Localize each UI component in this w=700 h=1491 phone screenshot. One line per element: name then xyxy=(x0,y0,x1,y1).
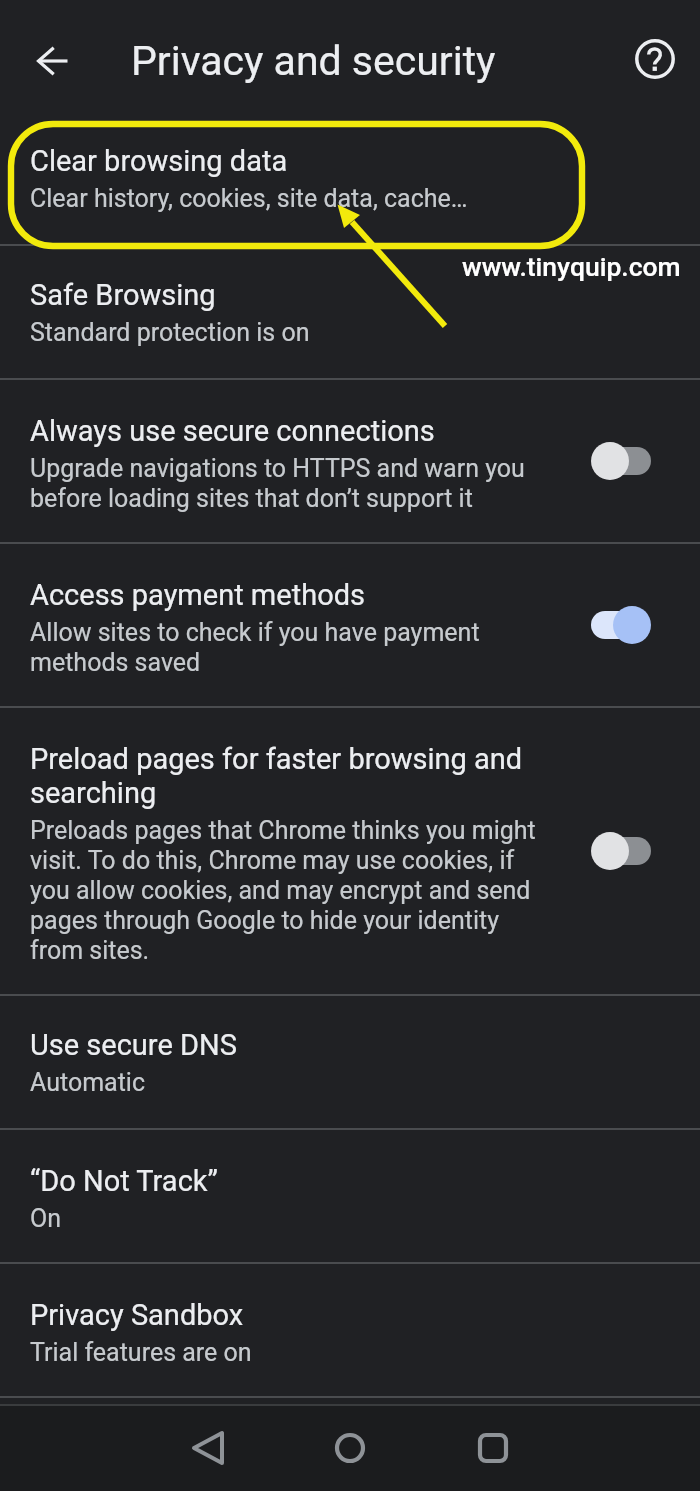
button[interactable]: Toggle on xyxy=(576,592,666,658)
button[interactable]: Back xyxy=(178,1404,238,1491)
button[interactable]: Recent apps xyxy=(463,1404,523,1491)
button[interactable]: Back xyxy=(27,34,81,88)
button[interactable]: Safe Browsing xyxy=(0,246,700,378)
staticText: www.tinyquip.com xyxy=(462,251,681,282)
staticText: Preloads pages that Chrome thinks you mi… xyxy=(30,815,545,965)
staticText: Clear history, cookies, site data, cache… xyxy=(30,183,468,213)
staticText: Automatic xyxy=(30,1067,146,1097)
staticText: Preload pages for faster browsing and se… xyxy=(30,742,545,810)
staticText: Privacy and security xyxy=(131,37,496,85)
button[interactable]: Access payment methods xyxy=(0,544,700,706)
staticText: Always use secure connections xyxy=(30,414,435,448)
button[interactable]: Privacy Sandbox xyxy=(0,1264,700,1396)
staticText: Privacy Sandbox xyxy=(30,1298,244,1332)
staticText: Allow sites to check if you have payment… xyxy=(30,617,545,677)
staticText: Trial features are on xyxy=(30,1337,252,1367)
button[interactable]: Toggle off xyxy=(576,428,666,494)
button[interactable]: “Do Not Track” xyxy=(0,1130,700,1262)
staticText: On xyxy=(30,1203,62,1233)
button[interactable]: Clear browsing data xyxy=(0,121,700,244)
staticText: Upgrade navigations to HTTPS and warn yo… xyxy=(30,453,545,513)
staticText: Use secure DNS xyxy=(30,1028,237,1062)
staticText: Safe Browsing xyxy=(30,278,216,312)
button[interactable]: Preload pages for faster browsing and se… xyxy=(0,708,700,994)
staticText: “Do Not Track” xyxy=(30,1164,218,1198)
staticText: Access payment methods xyxy=(30,578,365,612)
button[interactable]: Help xyxy=(628,32,682,86)
button[interactable]: Always use secure connections xyxy=(0,380,700,542)
staticText: Standard protection is on xyxy=(30,317,310,347)
button[interactable]: Use secure DNS xyxy=(0,996,700,1128)
button[interactable]: Home xyxy=(320,1404,380,1491)
button[interactable]: Toggle off xyxy=(576,818,666,884)
staticText: Clear browsing data xyxy=(30,144,288,178)
